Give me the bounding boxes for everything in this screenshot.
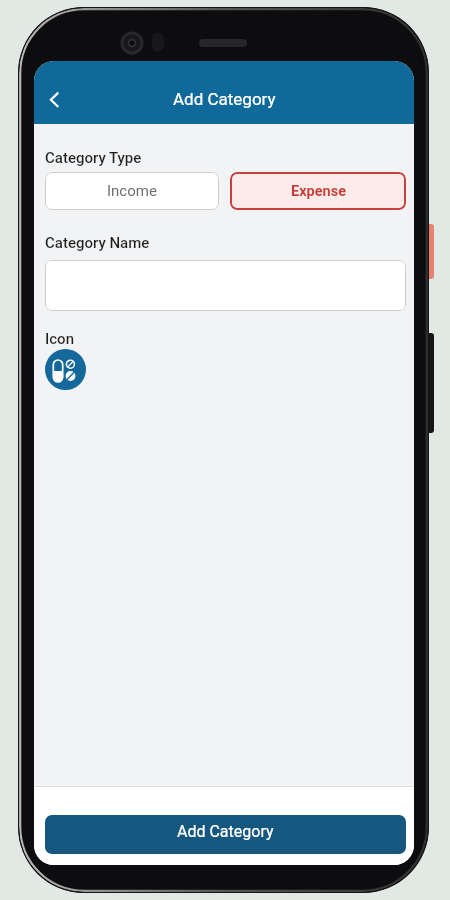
staticText: Add Category <box>173 89 276 109</box>
button[interactable]: Expense <box>230 172 406 210</box>
staticText: Expense <box>291 183 346 200</box>
staticText: Icon <box>45 330 74 348</box>
staticText: Category Type <box>45 149 142 167</box>
staticText: Income <box>107 182 157 200</box>
button[interactable] <box>47 91 65 109</box>
staticText: Category Name <box>45 234 150 252</box>
button[interactable]: Income <box>45 172 219 210</box>
button[interactable] <box>45 260 406 311</box>
button[interactable] <box>45 349 86 390</box>
button[interactable]: Add Category <box>45 815 406 854</box>
staticText: Add Category <box>177 822 274 841</box>
